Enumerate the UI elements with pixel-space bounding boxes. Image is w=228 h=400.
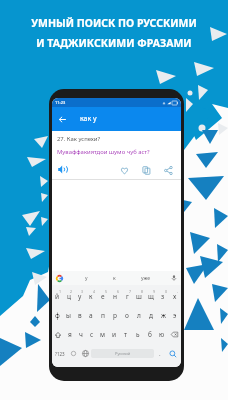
staticText: в	[78, 311, 82, 320]
staticText: н	[113, 292, 117, 301]
staticText: 9	[153, 289, 156, 294]
button[interactable]: 7	[121, 287, 133, 306]
staticText: УМНЫЙ ПОИСК ПО РУССКИМИ	[31, 16, 197, 30]
staticText: т	[124, 330, 128, 339]
staticText: 3	[81, 289, 84, 294]
staticText: е	[101, 292, 105, 301]
staticText: я	[68, 330, 72, 339]
staticText: с	[90, 330, 94, 339]
staticText: б	[148, 330, 152, 339]
staticText: а	[89, 311, 93, 320]
button[interactable]: Search	[165, 344, 181, 363]
staticText: м	[100, 330, 105, 339]
staticText: 0	[165, 289, 168, 294]
button[interactable]: ь	[132, 325, 144, 344]
button[interactable]: -	[169, 287, 181, 306]
staticText: Русский	[115, 351, 131, 356]
staticText: уже	[141, 275, 150, 282]
staticText: ь	[136, 330, 140, 339]
staticText: ?123	[55, 351, 65, 357]
button[interactable]: ы	[63, 306, 74, 325]
button[interactable]: 8	[133, 287, 145, 306]
staticText: п	[101, 311, 105, 320]
button[interactable]: 0	[157, 287, 169, 306]
button[interactable]: .	[154, 344, 165, 363]
button[interactable]: ф	[52, 306, 63, 325]
staticText: у	[78, 292, 82, 301]
button[interactable]: Share	[162, 164, 174, 176]
button[interactable]: ю	[156, 325, 168, 344]
staticText: ю	[159, 330, 165, 339]
button[interactable]: в	[74, 306, 85, 325]
button[interactable]: Back	[56, 113, 69, 126]
button[interactable]: р	[109, 306, 121, 325]
staticText: 4	[93, 289, 96, 294]
staticText: г	[126, 292, 129, 301]
staticText: к	[89, 292, 93, 301]
button[interactable]: 9	[145, 287, 157, 306]
button[interactable]: а	[85, 306, 97, 325]
button[interactable]: ч	[75, 325, 86, 344]
staticText: -	[177, 289, 179, 294]
button[interactable]: ?123	[52, 344, 68, 363]
staticText: о	[125, 311, 129, 320]
staticText: й	[55, 292, 60, 301]
button[interactable]: я	[64, 325, 75, 344]
button[interactable]: п	[97, 306, 109, 325]
button[interactable]: д	[145, 306, 157, 325]
button[interactable]: Shift	[52, 325, 64, 344]
staticText: ж	[161, 311, 166, 320]
staticText: И ТАДЖИКСКИМИ ФРАЗАМИ	[36, 36, 192, 50]
staticText: 2	[70, 289, 73, 294]
staticText: 5	[105, 289, 108, 294]
staticText: 11:23	[55, 100, 66, 105]
staticText: .	[159, 350, 161, 358]
button[interactable]: Favorite	[118, 164, 130, 176]
button[interactable]: Back	[52, 107, 181, 131]
staticText: Муваффакиятдои шумо чуб аст?	[57, 148, 150, 156]
staticText: р	[113, 311, 117, 320]
staticText: л	[137, 311, 141, 320]
staticText: д	[149, 311, 153, 320]
button[interactable]: 4	[85, 287, 97, 306]
button[interactable]: э	[169, 306, 181, 325]
staticText: э	[173, 311, 177, 320]
staticText: з	[161, 292, 165, 301]
staticText: как у	[80, 114, 97, 124]
button[interactable]: Backspace	[168, 325, 181, 344]
staticText: х	[173, 292, 177, 301]
staticText: ц	[67, 292, 71, 301]
button[interactable]: ж	[157, 306, 169, 325]
button[interactable]: Change language	[79, 344, 91, 363]
button[interactable]: 2	[63, 287, 74, 306]
button[interactable]: с	[86, 325, 97, 344]
button[interactable]: 3	[74, 287, 85, 306]
button[interactable]: л	[133, 306, 145, 325]
button[interactable]: 6	[109, 287, 121, 306]
button[interactable]: 5	[97, 287, 109, 306]
staticText: ч	[79, 330, 83, 339]
staticText: ш	[136, 292, 142, 301]
staticText: ы	[66, 311, 71, 320]
button[interactable]: 1	[52, 287, 63, 306]
staticText: и	[112, 330, 117, 339]
button[interactable]: б	[144, 325, 156, 344]
button[interactable]: Copy	[140, 164, 152, 176]
button[interactable]: о	[121, 306, 133, 325]
staticText: к	[113, 275, 116, 282]
button[interactable]: и	[108, 325, 120, 344]
staticText: 8	[141, 289, 144, 294]
button[interactable]: Русский	[91, 349, 154, 358]
staticText: 7	[129, 289, 132, 294]
staticText: ф	[55, 311, 60, 320]
staticText: 1	[59, 289, 62, 294]
staticText: у	[85, 275, 88, 282]
staticText: 6	[117, 289, 120, 294]
staticText: щ	[148, 292, 154, 301]
button[interactable]: Emoji	[68, 344, 79, 363]
staticText: 27. Как успехи?	[57, 135, 101, 143]
button[interactable]: т	[120, 325, 132, 344]
button[interactable]: Play audio	[57, 163, 70, 176]
button[interactable]: м	[97, 325, 108, 344]
